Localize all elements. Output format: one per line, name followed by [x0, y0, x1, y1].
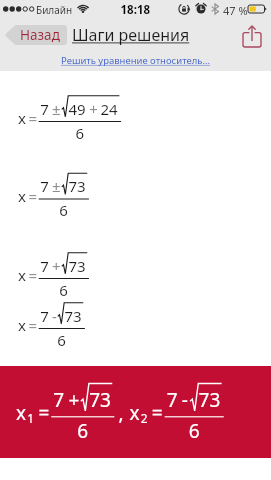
staticText: Решить уравнение относитель...: [61, 54, 211, 67]
button[interactable]: Решить уравнение относитель...: [0, 50, 271, 71]
staticText: Шаги решения: [72, 24, 190, 46]
button[interactable]: Назад: [5, 25, 67, 45]
staticText: Назад: [20, 26, 60, 44]
button[interactable]: Share: [242, 25, 262, 48]
